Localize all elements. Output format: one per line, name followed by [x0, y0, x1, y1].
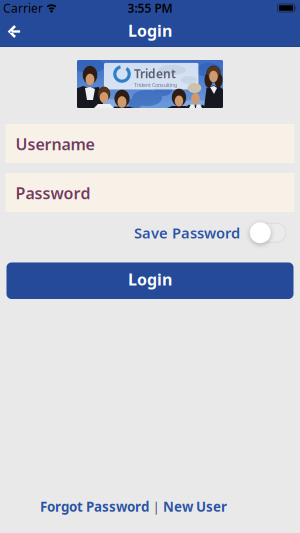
staticText: Username: [15, 133, 94, 155]
staticText: Carrier: [3, 0, 43, 16]
staticText: Login: [128, 20, 172, 41]
button[interactable]: New User: [163, 498, 227, 515]
staticText: Password: [15, 182, 90, 204]
staticText: Login: [128, 269, 172, 290]
staticText: Trident Consulting: [134, 81, 177, 89]
staticText: Forgot Password: [40, 498, 149, 515]
staticText: New User: [163, 498, 227, 515]
button[interactable]: Back: [0, 16, 28, 47]
staticText: Save Password: [134, 223, 240, 242]
button[interactable]: Login: [6, 262, 293, 299]
button[interactable]: Save Password: [251, 223, 286, 242]
staticText: 3:55 PM: [127, 0, 172, 16]
button[interactable]: Forgot Password: [40, 498, 149, 515]
staticText: Trident: [134, 65, 176, 81]
staticText: |: [152, 498, 159, 515]
